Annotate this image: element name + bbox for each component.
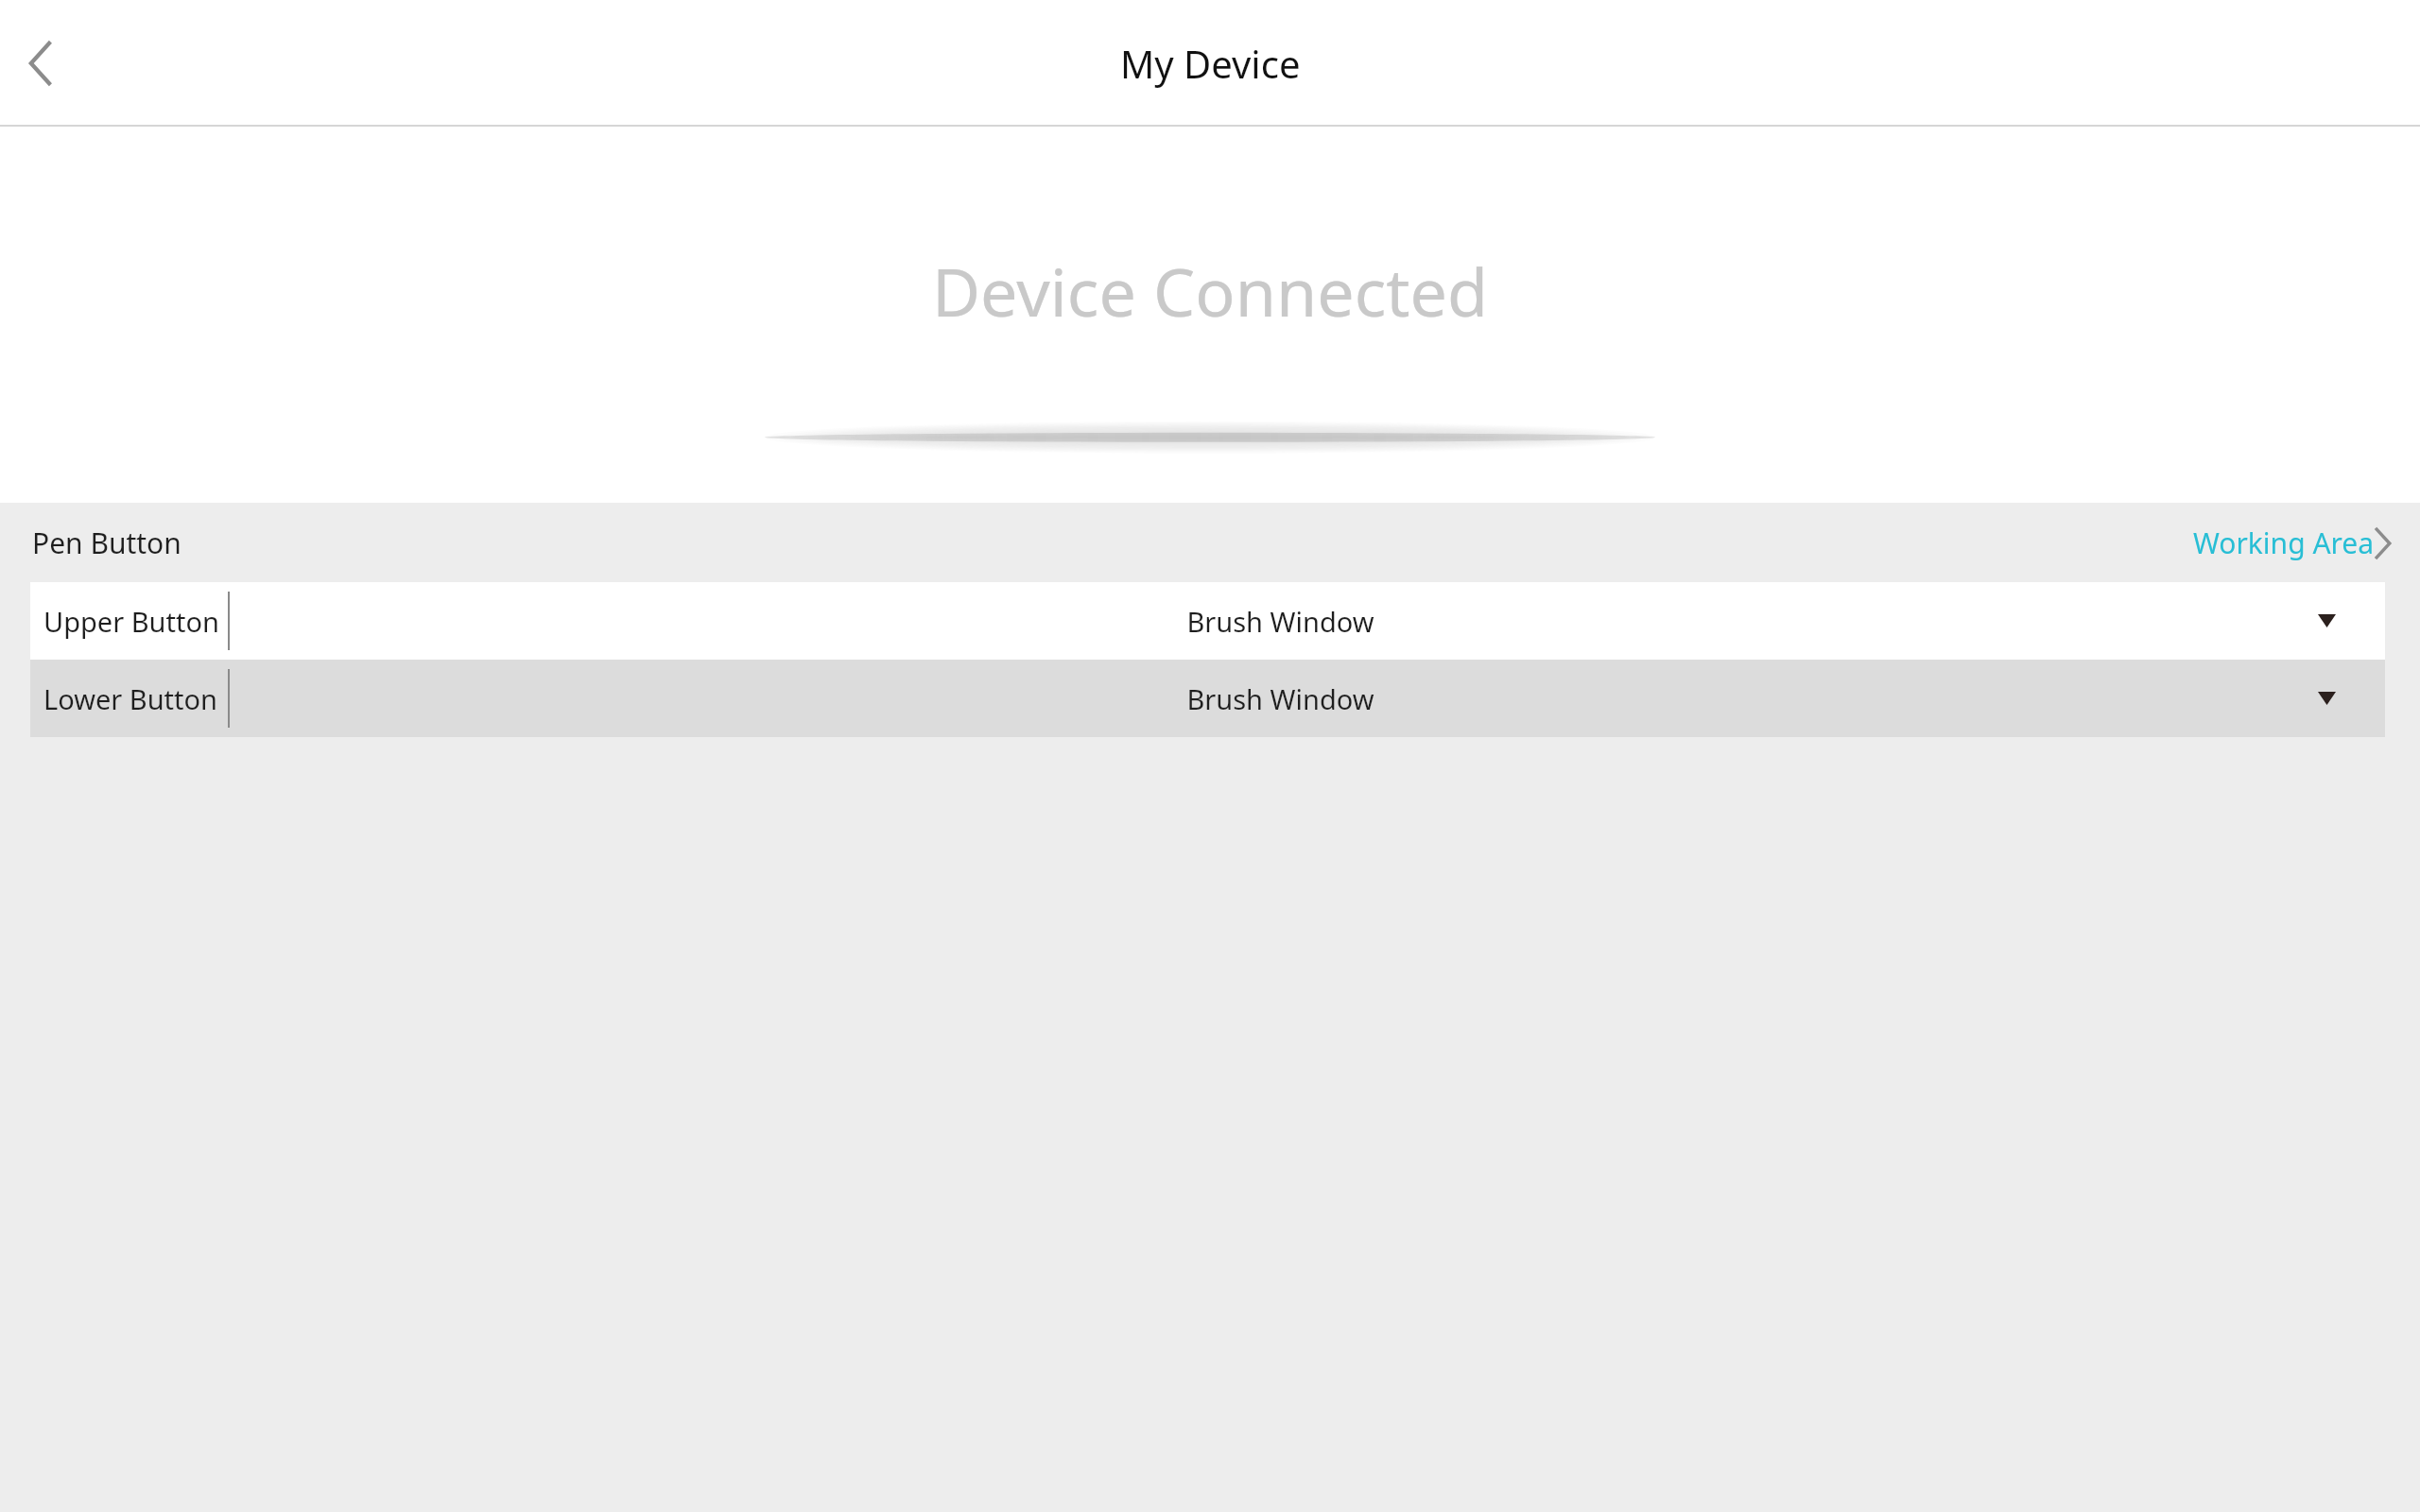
- staticText: My Device: [1120, 38, 1301, 89]
- other: Open Lower Button options: [2312, 684, 2341, 713]
- staticText: Brush Window: [1186, 603, 1374, 640]
- staticText: Brush Window: [1186, 680, 1374, 717]
- staticText: Pen Button: [32, 524, 181, 562]
- other: Open Upper Button options: [2312, 607, 2341, 635]
- staticText: Lower Button: [43, 680, 218, 717]
- staticText: Working Area: [2193, 524, 2375, 562]
- staticText: Upper Button: [43, 603, 219, 640]
- button[interactable]: Upper Button: [30, 582, 2385, 660]
- button[interactable]: Lower Button: [30, 660, 2385, 737]
- button[interactable]: Working Area: [2193, 524, 2392, 562]
- staticText: Device Connected: [932, 246, 1489, 335]
- button[interactable]: Back: [9, 32, 72, 94]
